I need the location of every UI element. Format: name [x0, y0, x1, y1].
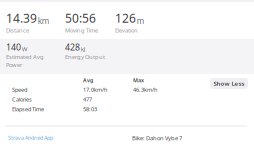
- staticText: Calories: [12, 96, 32, 103]
- staticText: Max: [133, 76, 144, 84]
- staticText: Distance: [6, 26, 29, 34]
- staticText: 46.3km/h: [133, 86, 157, 93]
- staticText: Power: [6, 61, 22, 69]
- staticText: Speed: [12, 86, 27, 93]
- staticText: km: [38, 15, 49, 26]
- staticText: Elevation: [115, 26, 138, 34]
- staticText: 50:56: [65, 10, 96, 26]
- staticText: 17.0km/h: [83, 86, 107, 93]
- staticText: 126: [115, 10, 136, 26]
- staticText: Estimated Avg: [6, 53, 44, 61]
- button[interactable]: Show Less: [210, 78, 248, 89]
- staticText: Avg: [83, 76, 93, 84]
- staticText: Elapsed Time: [12, 105, 44, 113]
- staticText: Show Less: [213, 79, 244, 88]
- staticText: 58:03: [83, 105, 97, 113]
- staticText: m: [137, 15, 144, 26]
- staticText: Strava Android App: [8, 134, 53, 141]
- staticText: 428: [65, 41, 80, 53]
- staticText: kJ: [81, 45, 86, 53]
- staticText: Energy Output: [65, 53, 105, 61]
- staticText: W: [22, 45, 28, 53]
- staticText: Bike: Dahon Vybe 7: [132, 134, 182, 142]
- button[interactable]: Strava Android App: [8, 134, 53, 141]
- staticText: 140: [6, 41, 21, 53]
- staticText: 477: [83, 96, 92, 103]
- staticText: Moving Time: [65, 26, 98, 34]
- staticText: 14.39: [6, 10, 37, 26]
